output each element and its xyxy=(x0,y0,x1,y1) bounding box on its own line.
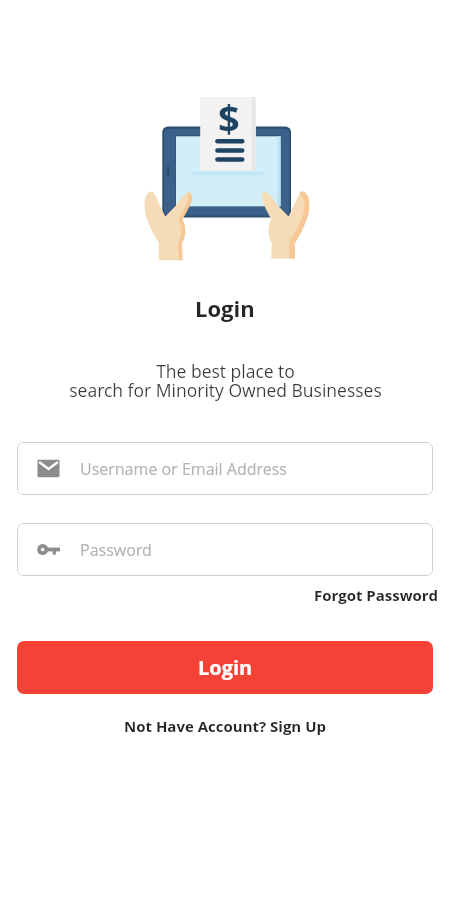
button[interactable]: Username or Email Address xyxy=(17,442,433,495)
button[interactable]: Forgot Password xyxy=(300,581,450,609)
staticText: $ xyxy=(218,92,240,144)
staticText: Login xyxy=(195,293,255,323)
staticText: The best place to search for Minority Ow… xyxy=(69,359,382,402)
button[interactable]: Login xyxy=(17,641,433,694)
staticText: Login xyxy=(198,654,253,681)
staticText: Password xyxy=(80,539,152,561)
button[interactable]: Not Have Account? Sign Up xyxy=(114,710,336,742)
staticText: Username or Email Address xyxy=(80,458,287,480)
button[interactable]: Password xyxy=(17,523,433,576)
